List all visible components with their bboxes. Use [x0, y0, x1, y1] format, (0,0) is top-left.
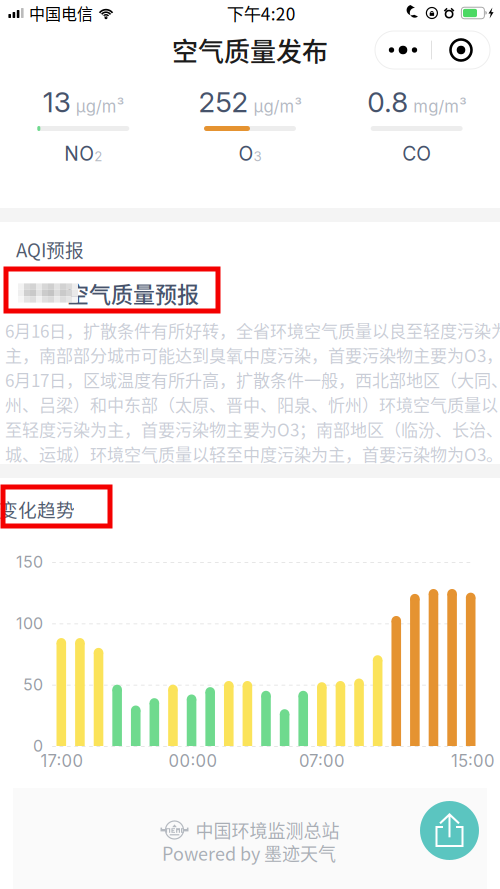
staticText: 150 — [16, 552, 43, 572]
staticText: 100 — [16, 614, 43, 633]
staticText: µg/m³ — [253, 96, 301, 116]
staticText: AQI预报 — [16, 235, 84, 262]
staticText: 6月16日，扩散条件有所好转，全省环境空气质量以良至轻度污染为 — [5, 318, 500, 343]
staticText: 13 — [43, 85, 71, 119]
staticText: 17:00 — [40, 751, 83, 771]
staticText: NO — [64, 142, 94, 165]
staticText: Powered by 墨迹天气 — [162, 840, 336, 866]
staticText: CO — [402, 142, 431, 165]
staticText: 空气质量预报 — [67, 277, 199, 309]
staticText: 空气质量发布 — [172, 31, 328, 69]
staticText: µg/m³ — [76, 96, 124, 116]
staticText: 主，南部部分城市可能达到臭氧中度污染，首要污染物主要为O3，。 — [5, 343, 500, 367]
staticText: 变化趋势 — [0, 495, 75, 522]
staticText: 中国电信 — [29, 1, 93, 25]
staticText: 中国环境监测总站 — [195, 817, 339, 843]
staticText: 15:00 — [451, 751, 495, 771]
staticText: 00:00 — [168, 751, 217, 771]
staticText: 州、吕梁）和中东部（太原、晋中、阳泉、忻州）环境空气质量以良 — [5, 392, 500, 417]
staticText: 252 — [198, 85, 248, 119]
button[interactable]: Share — [420, 801, 479, 860]
staticText: 0 — [33, 736, 43, 756]
staticText: O — [238, 142, 253, 165]
staticText: 6月17日，区域温度有所升高，扩散条件一般，西北部地区（大同、朔 — [5, 367, 500, 392]
staticText: 下午4:20 — [227, 0, 296, 26]
button[interactable]: More options and close mini program — [375, 31, 490, 69]
staticText: 0.8 — [367, 85, 408, 119]
staticText: 3 — [253, 148, 261, 164]
staticText: 07:00 — [299, 751, 345, 771]
staticText: 至轻度污染为主，首要污染物主要为O3；南部地区（临汾、长治、晋 — [5, 417, 500, 441]
staticText: 2 — [94, 148, 102, 164]
staticText: 城、运城）环境空气质量以轻至中度污染为主，首要污染物为O3。 — [5, 441, 500, 466]
staticText: 50 — [23, 675, 43, 694]
staticText: mg/m³ — [413, 96, 466, 116]
